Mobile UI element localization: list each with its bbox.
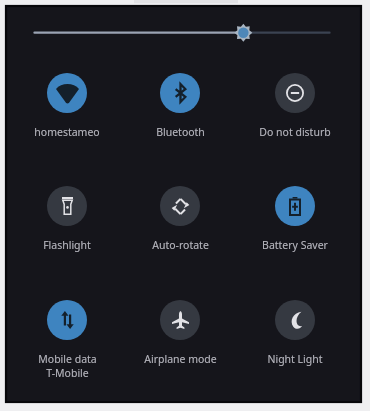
- button[interactable]: Auto-rotate: [124, 186, 236, 252]
- button[interactable]: homestameo: [11, 73, 123, 139]
- button[interactable]: Airplane mode: [124, 300, 236, 366]
- staticText: Battery Saver: [262, 238, 328, 252]
- staticText: Airplane mode: [144, 352, 217, 366]
- button[interactable]: Battery Saver: [239, 186, 351, 252]
- button[interactable]: Flashlight: [11, 186, 123, 252]
- staticText: Bluetooth: [156, 125, 205, 139]
- staticText: homestameo: [34, 125, 100, 139]
- staticText: Mobile data: [38, 352, 97, 366]
- button[interactable]: Mobile data: [11, 300, 123, 380]
- staticText: T-Mobile: [46, 366, 89, 380]
- staticText: Flashlight: [43, 238, 91, 252]
- button[interactable]: Bluetooth: [124, 73, 236, 139]
- button[interactable]: Brightness: [20, 15, 340, 51]
- staticText: Auto-rotate: [152, 238, 209, 252]
- button[interactable]: Do not disturb: [239, 73, 351, 139]
- button[interactable]: Night Light: [239, 300, 351, 366]
- staticText: Do not disturb: [259, 125, 331, 139]
- staticText: Night Light: [267, 352, 323, 366]
